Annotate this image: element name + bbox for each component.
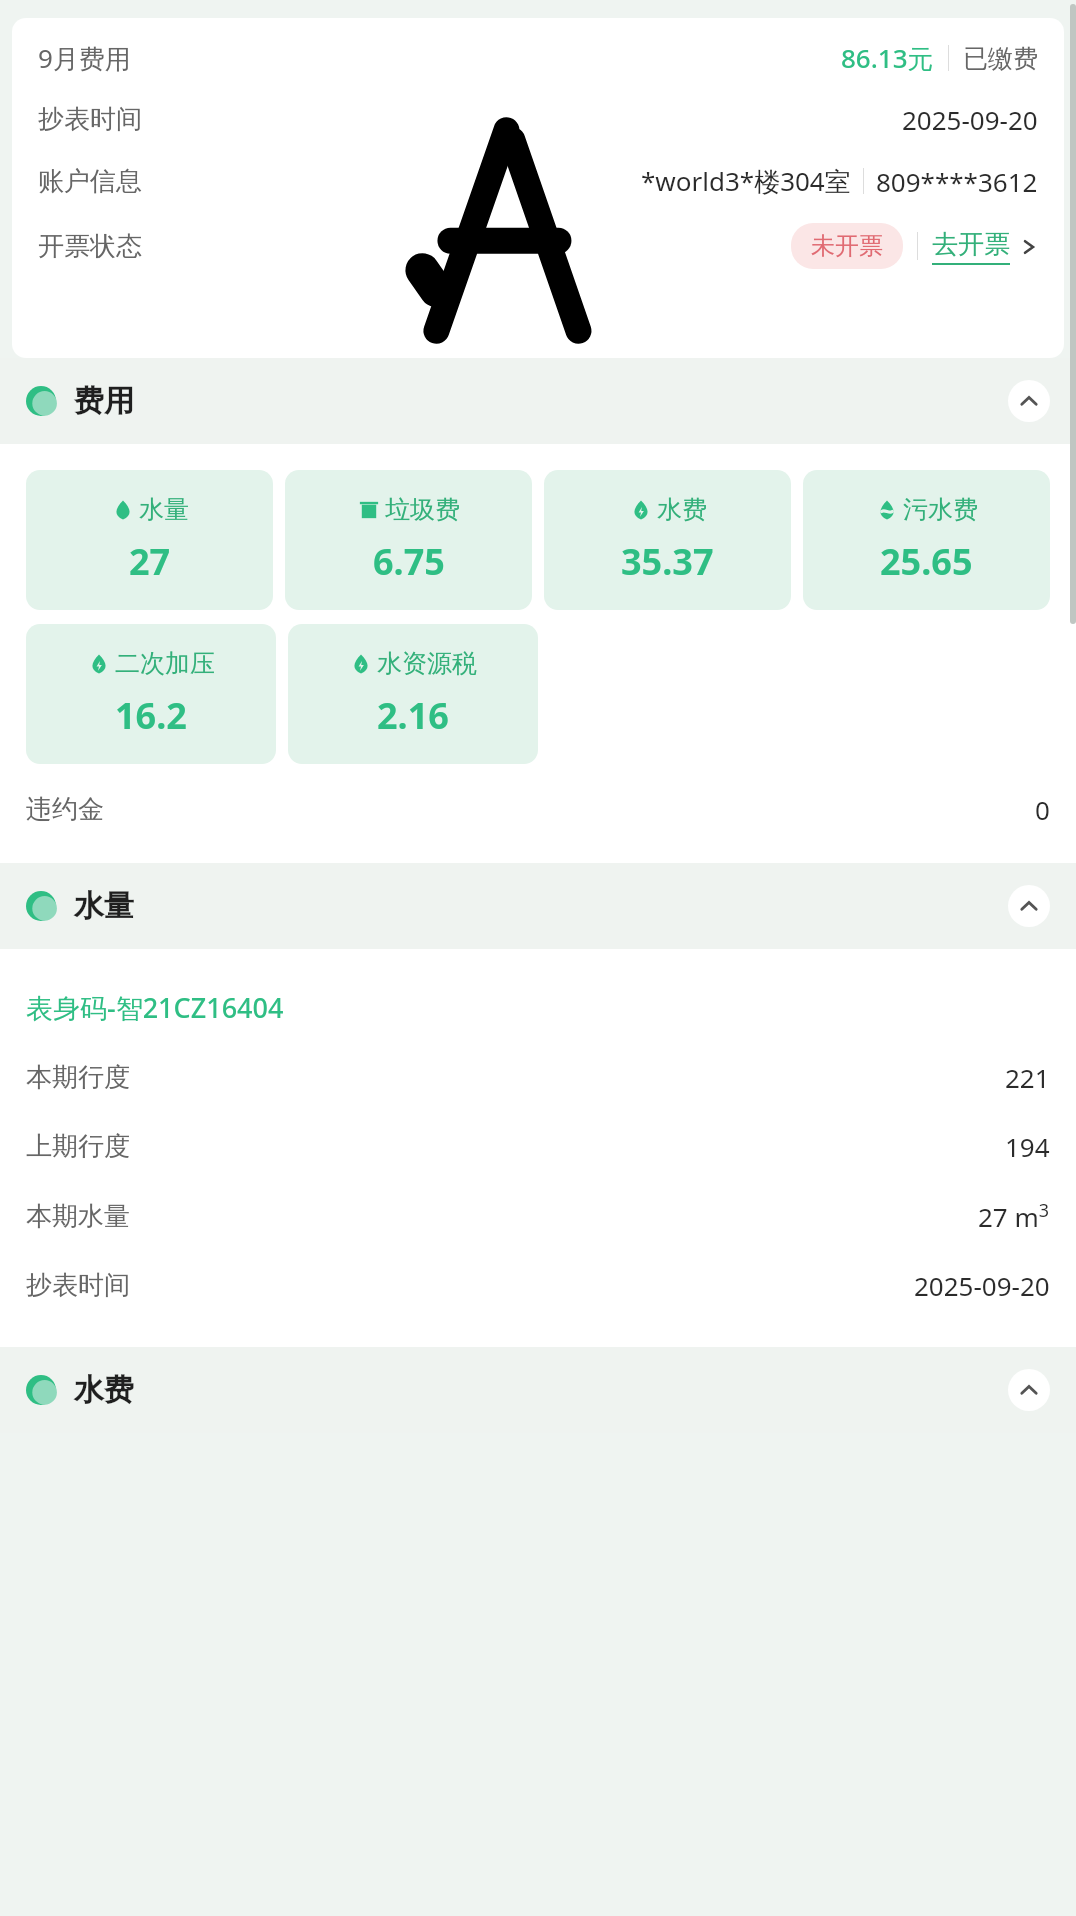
staticText: 86.13元 bbox=[841, 40, 934, 76]
button[interactable]: Collapse bbox=[1008, 1369, 1050, 1411]
staticText: 水资源税 bbox=[377, 648, 477, 679]
button[interactable]: 去开票 bbox=[932, 228, 1038, 265]
staticText: 未开票 bbox=[811, 231, 883, 261]
staticText: 本期水量 bbox=[26, 1200, 130, 1233]
staticText: 水费 bbox=[74, 1371, 134, 1409]
staticText: 2.16 bbox=[377, 691, 449, 740]
staticText: 25.65 bbox=[880, 537, 973, 586]
button[interactable]: 污水费 bbox=[803, 470, 1050, 610]
button[interactable]: 水费 bbox=[0, 1347, 1076, 1433]
staticText: 账户信息 bbox=[38, 165, 142, 198]
staticText: 污水费 bbox=[903, 494, 978, 525]
button[interactable]: Collapse bbox=[1008, 885, 1050, 927]
staticText: 费用 bbox=[74, 382, 134, 420]
staticText: 194 bbox=[1005, 1129, 1050, 1164]
button[interactable]: 费用 bbox=[0, 358, 1076, 444]
button[interactable]: 水费 bbox=[544, 470, 791, 610]
staticText: 水费 bbox=[657, 494, 707, 525]
button[interactable]: 水量 bbox=[26, 470, 273, 610]
staticText: 开票状态 bbox=[38, 230, 142, 263]
staticText: 0 bbox=[1035, 792, 1050, 827]
staticText: 水量 bbox=[74, 887, 134, 925]
staticText: 35.37 bbox=[621, 537, 714, 586]
button[interactable]: 水资源税 bbox=[288, 624, 538, 764]
staticText: 二次加压 bbox=[115, 648, 215, 679]
staticText: 27 m3 bbox=[978, 1198, 1050, 1234]
staticText: 9月费用 bbox=[38, 40, 131, 76]
staticText: 已缴费 bbox=[963, 43, 1038, 74]
button[interactable]: 水量 bbox=[0, 863, 1076, 949]
staticText: 表身码-智21CZ16404 bbox=[26, 989, 284, 1026]
button[interactable]: Collapse bbox=[1008, 380, 1050, 422]
staticText: 221 bbox=[1005, 1060, 1050, 1095]
staticText: 本期行度 bbox=[26, 1061, 130, 1094]
staticText: 上期行度 bbox=[26, 1130, 130, 1163]
staticText: 违约金 bbox=[26, 793, 104, 826]
staticText: 去开票 bbox=[932, 228, 1010, 261]
staticText: 809****3612 bbox=[876, 164, 1038, 199]
button[interactable]: 二次加压 bbox=[26, 624, 276, 764]
staticText: 抄表时间 bbox=[38, 103, 142, 136]
button[interactable]: 垃圾费 bbox=[285, 470, 532, 610]
staticText: 6.75 bbox=[373, 537, 445, 586]
staticText: *world3*楼304室 bbox=[641, 163, 851, 199]
staticText: 2025-09-20 bbox=[914, 1268, 1050, 1303]
staticText: 2025-09-20 bbox=[902, 102, 1038, 137]
staticText: 抄表时间 bbox=[26, 1269, 130, 1302]
staticText: 水量 bbox=[139, 494, 189, 525]
staticText: 16.2 bbox=[115, 691, 187, 740]
staticText: 27 bbox=[129, 537, 171, 586]
staticText: 垃圾费 bbox=[385, 494, 460, 525]
